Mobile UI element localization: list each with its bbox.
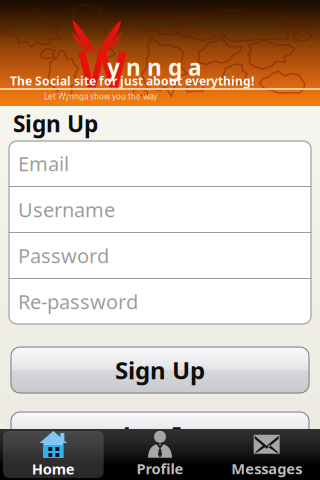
- button[interactable]: Profile: [107, 429, 213, 480]
- staticText: The Social site for just about everythin…: [10, 73, 254, 89]
- staticText: Messages: [231, 459, 302, 478]
- staticText: Sign Up: [115, 354, 205, 386]
- staticText: Log In: [123, 419, 197, 451]
- staticText: W: [78, 34, 127, 101]
- staticText: Re-password: [18, 288, 138, 315]
- staticText: Sign Up: [13, 108, 98, 138]
- staticText: Username: [18, 196, 115, 223]
- button[interactable]: Log In: [11, 412, 309, 458]
- staticText: Home: [32, 459, 75, 478]
- button[interactable]: Sign Up: [11, 347, 309, 393]
- staticText: Email: [18, 150, 69, 177]
- staticText: y n n g a: [107, 52, 202, 82]
- button[interactable]: Messages: [213, 429, 320, 480]
- button[interactable]: Home: [0, 429, 107, 480]
- staticText: Password: [18, 242, 109, 269]
- staticText: Profile: [136, 459, 183, 478]
- staticText: Let Wynnga show you the way: [44, 91, 157, 102]
